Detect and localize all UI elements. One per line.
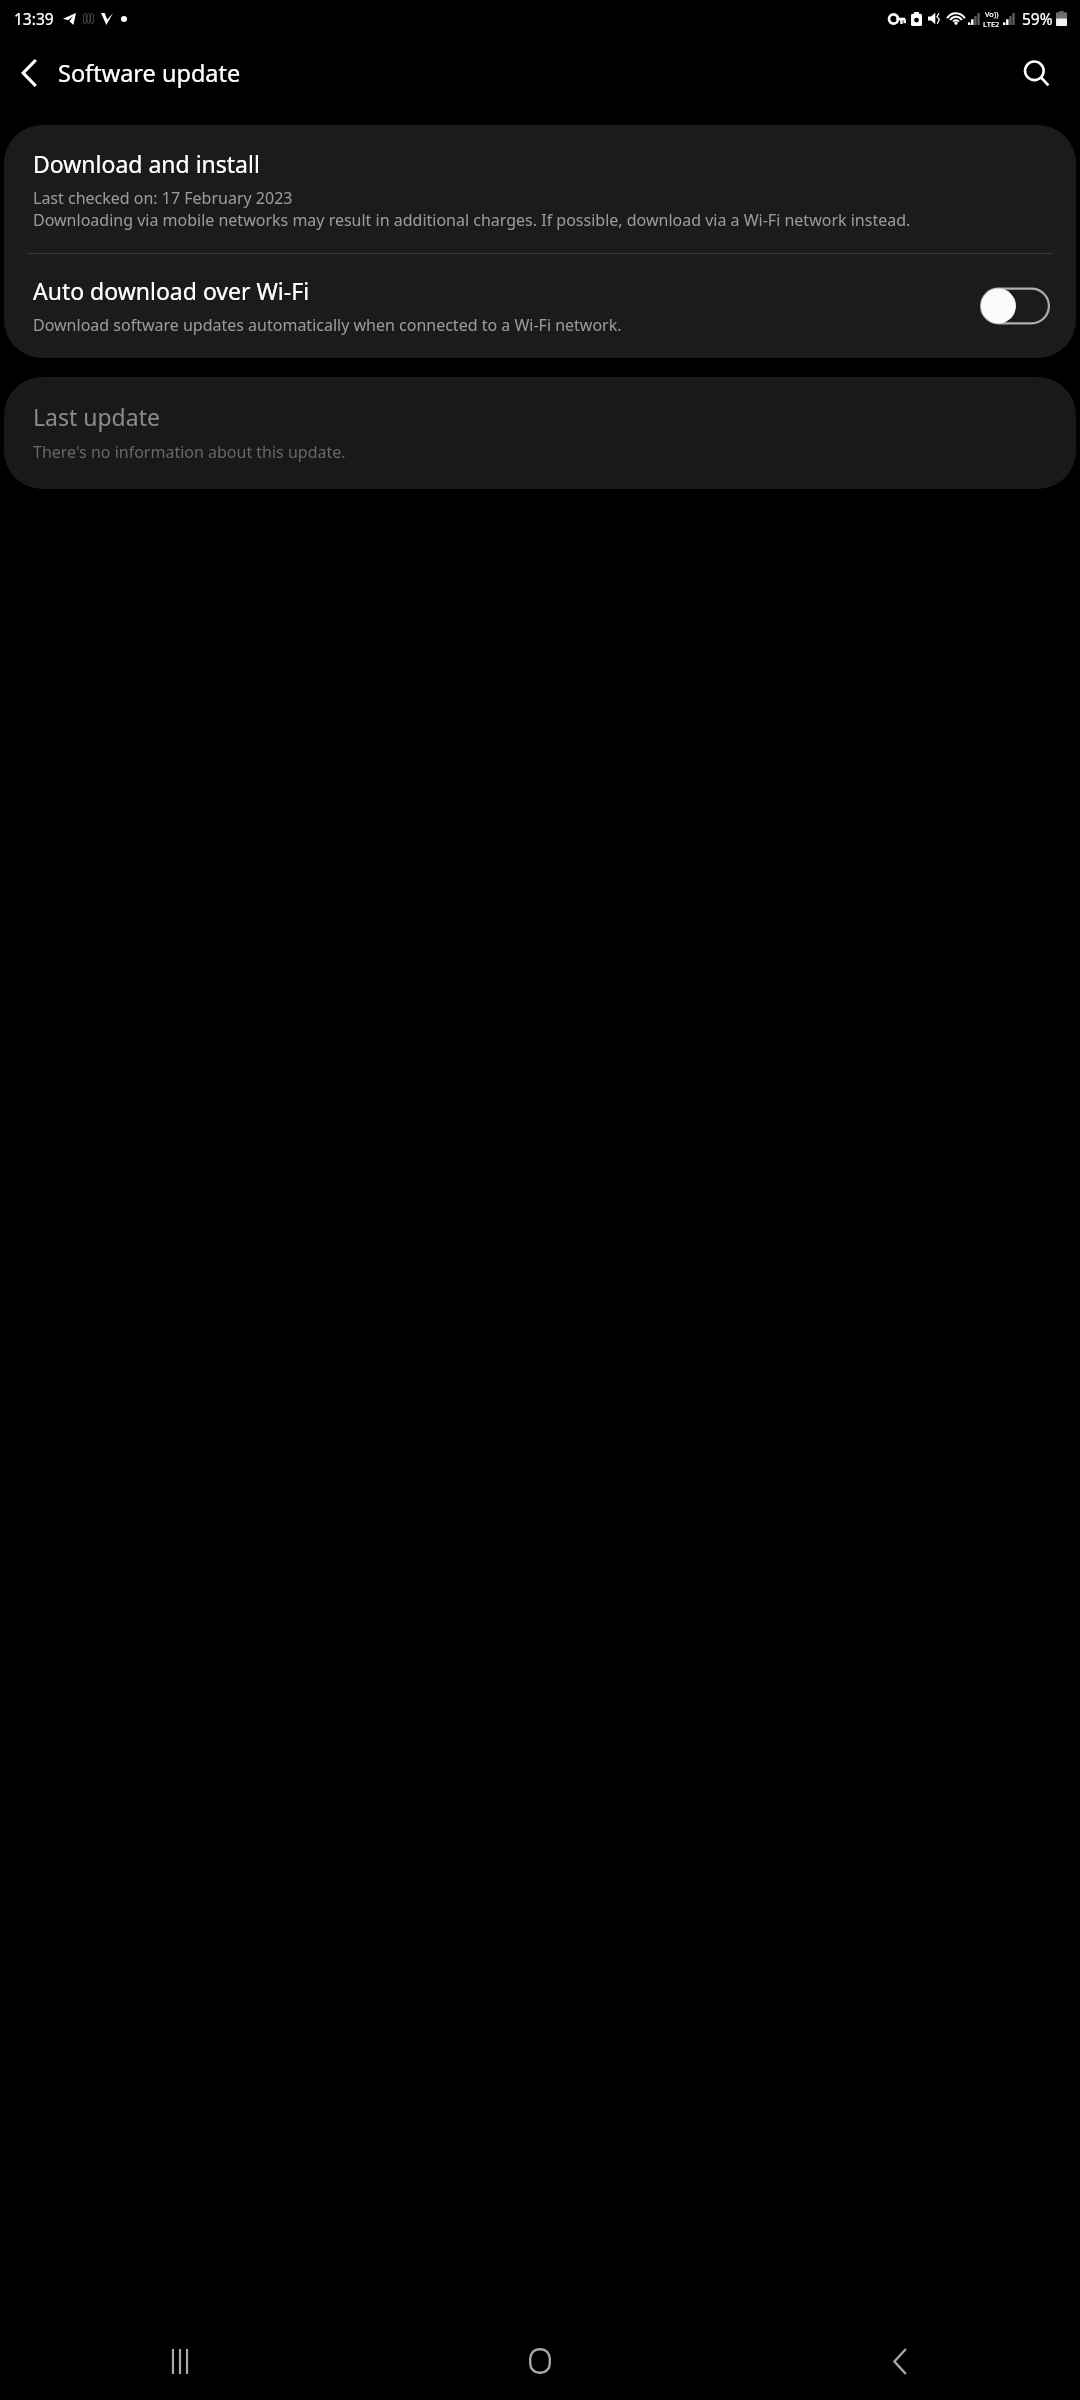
staticText: 59% [1022,8,1053,29]
staticText: LTE2 [983,19,1000,29]
button[interactable]: Auto download over Wi-Fi toggle [980,285,1050,327]
staticText: Last checked on: 17 February 2023 Downlo… [33,187,911,231]
staticText: Vo)) [985,9,999,19]
staticText: Software update [58,57,241,89]
button[interactable]: Download and install [4,125,1076,253]
button[interactable]: Back [720,2322,1080,2400]
button[interactable]: Last update [4,377,1076,489]
staticText: There's no information about this update… [33,441,346,463]
staticText: Last update [33,401,160,432]
staticText: Download and install [33,148,260,179]
button[interactable]: Auto download over Wi-Fi [4,254,1076,358]
staticText: 13:39 [14,8,54,29]
button[interactable]: Back [0,44,58,102]
staticText: Auto download over Wi-Fi [33,275,310,306]
button[interactable]: Recents [0,2322,360,2400]
button[interactable]: Home [360,2322,720,2400]
button[interactable]: Search [1010,47,1062,99]
staticText: Download software updates automatically … [33,314,622,336]
